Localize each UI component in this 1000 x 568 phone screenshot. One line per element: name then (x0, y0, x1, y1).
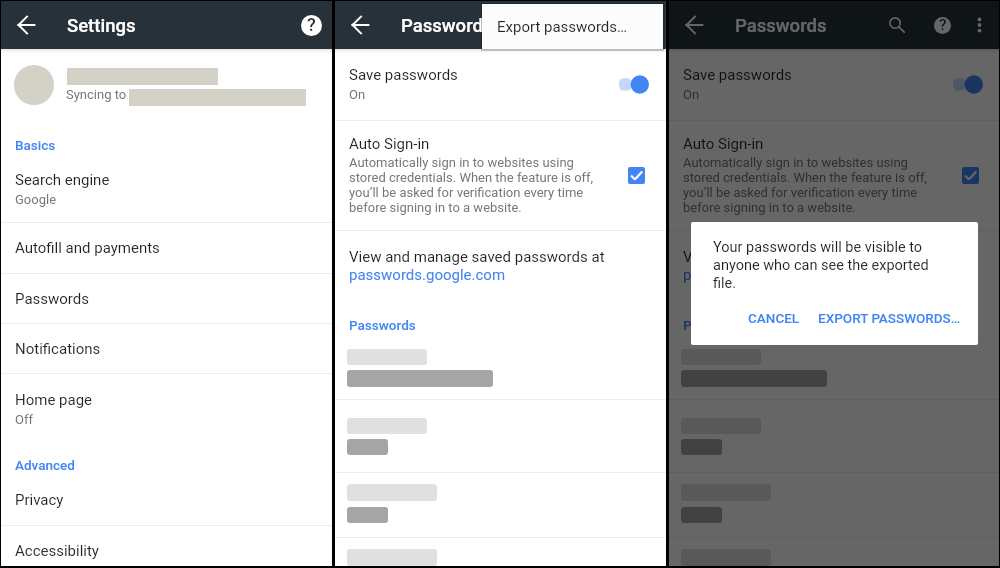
staticText: Home page (15, 391, 93, 409)
button[interactable]: Back (341, 1, 381, 49)
button[interactable]: Back (7, 1, 47, 49)
button[interactable]: Autofill and payments (1, 223, 332, 273)
staticText: Advanced (15, 457, 75, 473)
staticText: On (349, 87, 366, 102)
button[interactable]: Auto Sign-in (335, 121, 666, 230)
staticText: Save passwords (683, 66, 792, 84)
staticText: Autofill and payments (15, 239, 160, 257)
button[interactable]: More options (962, 1, 997, 49)
button[interactable]: Save passwords (669, 49, 999, 120)
button[interactable]: Search (875, 1, 919, 49)
staticText: Off (15, 412, 33, 427)
button[interactable] (335, 341, 666, 399)
staticText: Save passwords (349, 66, 458, 84)
staticText: View and manage saved passwords at (349, 248, 605, 266)
staticText: Passwords (735, 15, 827, 37)
staticText: ? (939, 16, 947, 33)
staticText: Passwords (683, 317, 750, 333)
button[interactable] (335, 400, 666, 472)
button[interactable]: Syncing to (1, 49, 332, 119)
staticText: Auto Sign-in (349, 135, 430, 153)
button[interactable]: Home page (1, 374, 332, 434)
button[interactable]: Notifications (1, 324, 332, 374)
button[interactable] (335, 538, 666, 568)
button[interactable]: Auto Sign-in (669, 121, 999, 230)
button[interactable]: Help (920, 1, 964, 49)
staticText: Settings (67, 15, 136, 37)
button[interactable] (669, 473, 999, 537)
button[interactable]: Accessibility (1, 526, 332, 568)
staticText: Notifications (15, 340, 101, 358)
staticText: Search engine (15, 171, 110, 189)
staticText: Export passwords… (497, 18, 628, 36)
button[interactable] (669, 341, 999, 399)
staticText: Auto Sign-in (683, 135, 764, 153)
button[interactable] (669, 400, 999, 472)
button[interactable]: Back (675, 1, 715, 49)
staticText: Accessibility (15, 542, 99, 560)
staticText: Automatically sign in to websites using … (349, 155, 597, 215)
staticText: Privacy (15, 491, 64, 509)
staticText: Passwords (401, 15, 493, 37)
button[interactable]: Search engine (1, 161, 332, 222)
staticText: Automatically sign in to websites using … (683, 155, 931, 215)
staticText: EXPORT PASSWORDS… (818, 310, 961, 326)
button[interactable]: passwords.google.com (349, 266, 506, 284)
staticText: On (683, 87, 700, 102)
staticText: View and manage saved passwords at (683, 248, 939, 266)
staticText: Passwords (15, 290, 89, 308)
staticText: ? (307, 14, 316, 35)
button[interactable]: passwords.google.com (683, 266, 840, 284)
staticText: Google (15, 192, 57, 207)
staticText: CANCEL (748, 310, 800, 326)
staticText: Your passwords will be visible to anyone… (713, 239, 945, 291)
button[interactable] (335, 473, 666, 537)
staticText: Basics (15, 137, 56, 153)
button[interactable]: Help (289, 1, 333, 49)
button[interactable]: EXPORT PASSWORDS… (809, 301, 970, 335)
staticText: Syncing to (66, 87, 127, 102)
button[interactable]: Passwords (1, 274, 332, 324)
button[interactable] (669, 538, 999, 568)
staticText: Passwords (349, 317, 416, 333)
button[interactable]: CANCEL (739, 301, 809, 335)
button[interactable]: Export passwords… (482, 4, 663, 49)
button[interactable]: Privacy (1, 476, 332, 525)
button[interactable]: Save passwords (335, 49, 666, 120)
